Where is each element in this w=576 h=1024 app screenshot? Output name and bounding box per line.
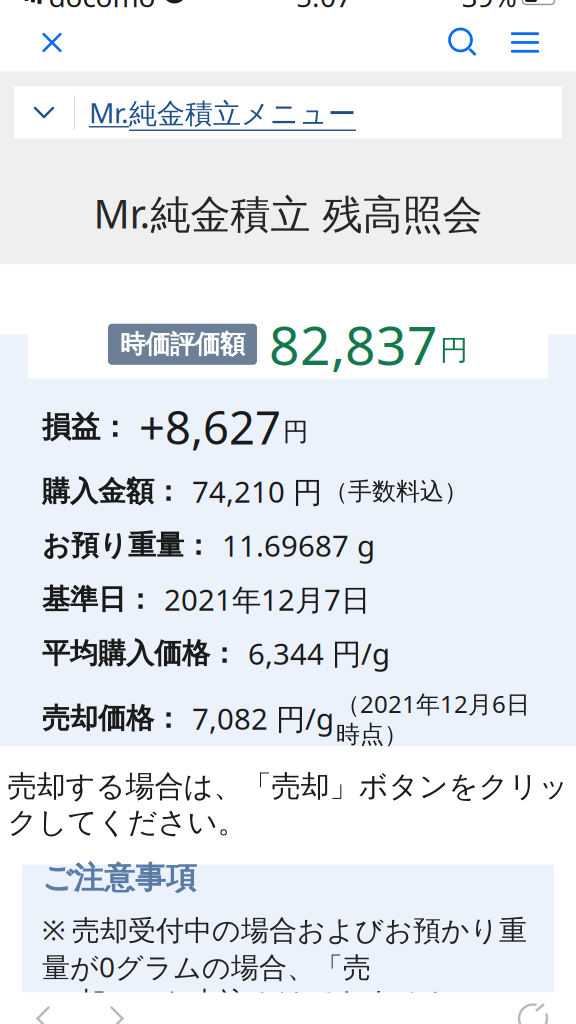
staticText: （手数料込） bbox=[324, 477, 468, 506]
staticText: 6,344 円/g bbox=[248, 634, 390, 673]
button[interactable]: Mr.純金積立メニュー bbox=[14, 86, 562, 138]
staticText: 売却 bbox=[476, 759, 534, 795]
button[interactable]: Forward bbox=[80, 992, 154, 1024]
staticText: 5:07 bbox=[296, 0, 352, 15]
staticText: docomo bbox=[48, 0, 155, 15]
staticText: 売却価格： bbox=[42, 701, 182, 736]
staticText: 82,837 bbox=[269, 309, 438, 380]
staticText: 2021年12月7日 bbox=[164, 580, 370, 619]
staticText: 円 bbox=[283, 416, 308, 447]
button[interactable]: Menu bbox=[494, 13, 556, 71]
staticText: （2021年12月6日時点） bbox=[336, 688, 530, 749]
staticText: +8,627 bbox=[139, 397, 281, 457]
staticText: 円 bbox=[440, 333, 468, 367]
staticText: 基準日： bbox=[42, 582, 154, 617]
staticText: 購入金額： bbox=[42, 474, 182, 509]
staticText: 平均購入価格： bbox=[42, 636, 238, 670]
staticText: ※ 売却受付中の場合およびお預かり重量が0グラムの場合、「売 却」のお申込みはで… bbox=[42, 911, 527, 1020]
button[interactable]: Search bbox=[432, 13, 494, 71]
button[interactable]: Reload bbox=[496, 992, 570, 1024]
staticText: 39% bbox=[461, 0, 516, 15]
staticText: 時価評価額 bbox=[120, 329, 245, 360]
staticText: 74,210 円 bbox=[192, 472, 322, 511]
button[interactable]: Close bbox=[20, 13, 84, 71]
staticText: 損益： bbox=[42, 409, 129, 445]
button[interactable]: Back bbox=[6, 992, 80, 1024]
staticText: お預り重量： bbox=[42, 528, 212, 563]
staticText: Mr.純金積立メニュー bbox=[89, 94, 356, 131]
staticText: 11.69687 g bbox=[222, 526, 375, 565]
button[interactable]: 売却 bbox=[470, 755, 540, 799]
staticText: ご注意事項 bbox=[42, 859, 197, 897]
staticText: 売却する場合は、「売却」ボタンをクリックしてください。 bbox=[7, 768, 568, 841]
staticText: Mr.純金積立 残高照会 bbox=[93, 186, 482, 240]
staticText: 7,082 円/g bbox=[192, 699, 334, 738]
